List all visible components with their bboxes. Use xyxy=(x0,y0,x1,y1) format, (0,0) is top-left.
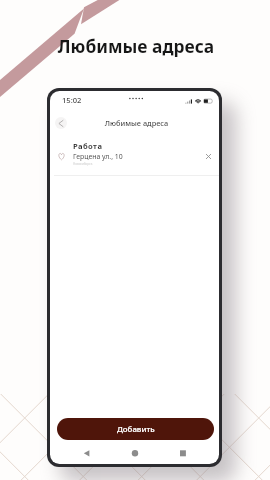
staticText: Герцена ул., 10 xyxy=(73,152,123,161)
button[interactable]: Удалить xyxy=(200,148,216,164)
staticText: 15:02 xyxy=(62,95,82,105)
staticText: Работа xyxy=(73,141,103,151)
staticText: Любимые адреса xyxy=(1,34,270,58)
staticText: Любимые адреса xyxy=(52,118,219,128)
staticText: Новосибирск xyxy=(73,162,93,166)
staticText: Добавить xyxy=(117,424,155,435)
button[interactable]: Работа xyxy=(50,138,219,175)
button[interactable]: Добавить xyxy=(57,418,214,440)
button[interactable]: Назад xyxy=(55,117,67,129)
